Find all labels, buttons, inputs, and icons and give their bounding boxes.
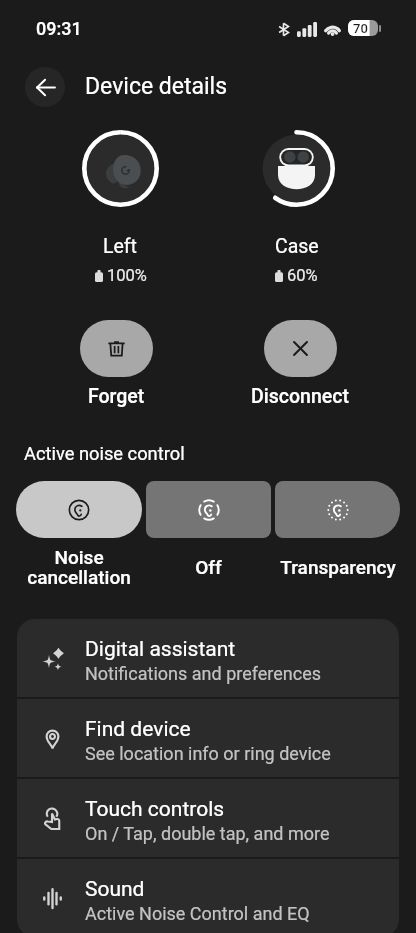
staticText: On / Tap, double tap, and more [85, 823, 330, 844]
staticText: Active Noise Control and EQ [85, 903, 310, 924]
staticText: Find device [85, 717, 191, 742]
staticText: Transparency [280, 556, 396, 578]
staticText: 09:31 [36, 18, 82, 39]
staticText: Forget [88, 385, 145, 408]
staticText: Off [195, 556, 222, 578]
staticText: Device details [85, 73, 228, 100]
staticText: 100% [107, 266, 147, 285]
staticText: Notifications and preferences [85, 663, 321, 684]
button[interactable]: Noise cancellation [16, 481, 142, 538]
staticText: Case [275, 235, 319, 258]
staticText: Noise cancellation [27, 546, 131, 588]
button[interactable]: Forget [80, 320, 153, 377]
staticText: Touch controls [85, 797, 225, 822]
staticText: 60% [287, 266, 318, 285]
staticText: See location info or ring device [85, 743, 331, 764]
staticText: Left [103, 235, 138, 258]
button[interactable]: Touch controls [17, 779, 399, 857]
button[interactable]: Transparency [275, 481, 400, 538]
staticText: Sound [85, 877, 145, 902]
button[interactable]: Off [146, 481, 271, 538]
staticText: Active noise control [24, 443, 185, 464]
staticText: Disconnect [251, 385, 349, 408]
staticText: Digital assistant [85, 637, 236, 662]
button[interactable]: Find device [17, 699, 399, 777]
button[interactable]: Digital assistant [17, 619, 399, 697]
staticText: 70 [353, 21, 368, 36]
button[interactable]: Sound [17, 859, 399, 933]
button[interactable]: Disconnect [264, 320, 337, 377]
button[interactable]: Back [25, 67, 65, 107]
